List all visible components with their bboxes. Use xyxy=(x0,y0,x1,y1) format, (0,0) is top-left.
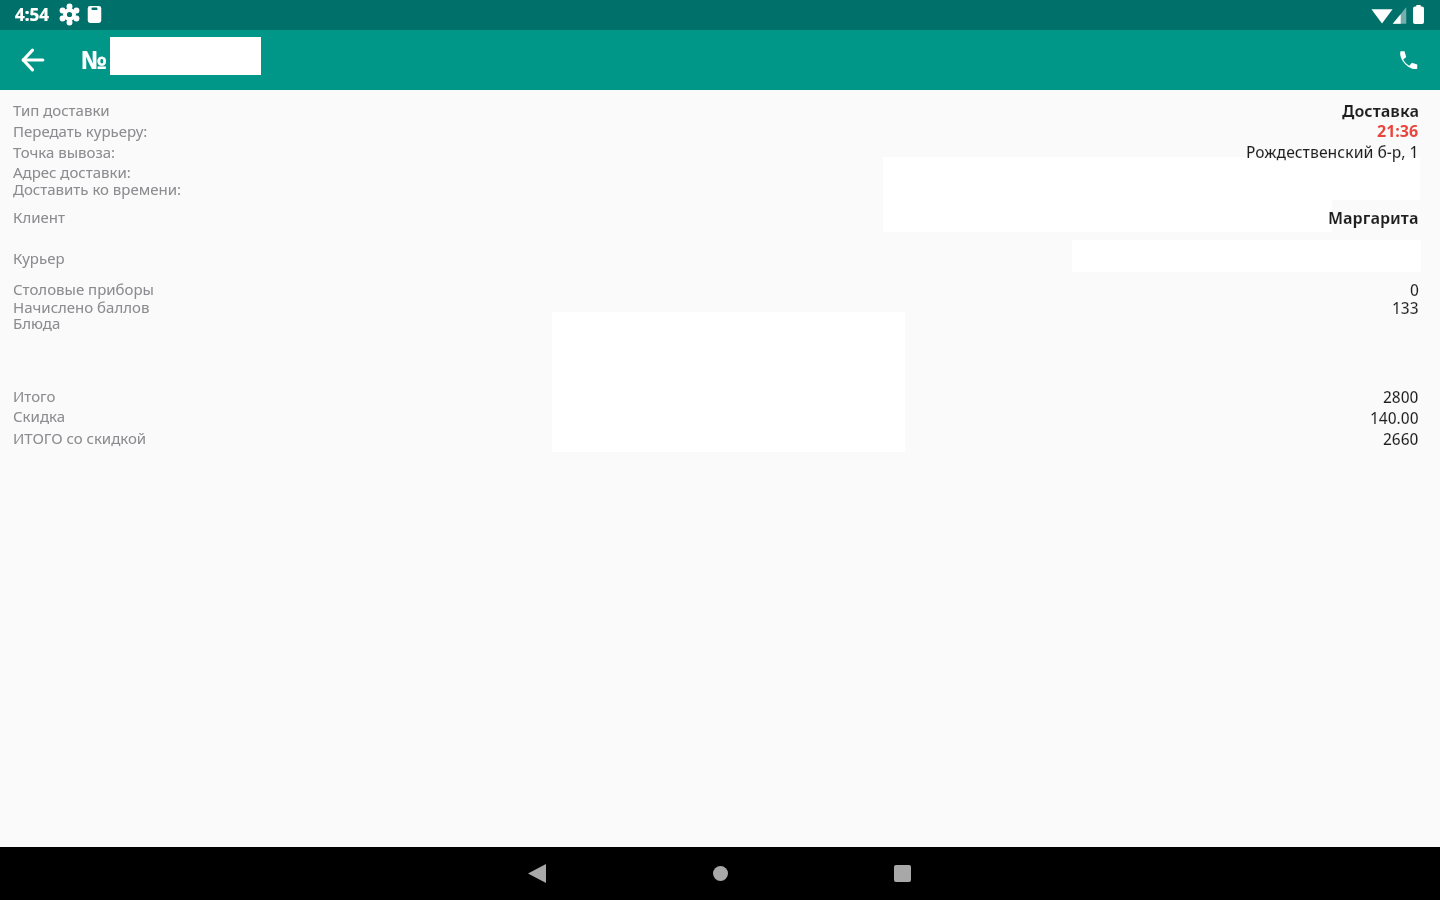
button[interactable]: Доставить ко времени: xyxy=(0,179,1440,199)
button[interactable]: Начислено баллов xyxy=(0,297,1440,318)
staticText: Клиент xyxy=(13,207,65,227)
button[interactable]: Back xyxy=(10,38,54,82)
staticText: Блюда xyxy=(13,313,61,333)
staticText: Передать курьеру: xyxy=(13,121,148,141)
staticText: 4:54 xyxy=(15,3,49,26)
staticText: 133 xyxy=(1392,297,1419,318)
button[interactable]: Точка вывоза: xyxy=(0,142,1440,163)
button[interactable]: Recent apps xyxy=(866,847,938,900)
staticText: Тип доставки xyxy=(13,100,110,120)
staticText: Рождественский б-р, 1 xyxy=(1246,141,1419,162)
staticText: Маргарита xyxy=(1328,207,1419,229)
button[interactable]: Адрес доставки: xyxy=(0,162,1440,182)
button[interactable]: Call xyxy=(1386,38,1430,82)
staticText: Скидка xyxy=(13,406,65,426)
staticText: 140.00 xyxy=(1370,407,1419,428)
staticText: 2660 xyxy=(1383,428,1419,449)
staticText: ИТОГО со скидкой xyxy=(13,428,147,448)
button[interactable]: Home xyxy=(684,847,756,900)
staticText: Итого xyxy=(13,386,56,406)
button[interactable]: Передать курьеру: xyxy=(0,121,1440,143)
button[interactable]: Курьер xyxy=(0,248,1440,268)
button[interactable]: ИТОГО со скидкой xyxy=(0,428,1440,449)
button[interactable]: Блюда xyxy=(0,313,1440,333)
staticText: Доставка xyxy=(1342,100,1419,122)
staticText: 21:36 xyxy=(1377,120,1419,142)
button[interactable]: Скидка xyxy=(0,406,1440,427)
button[interactable]: Итого xyxy=(0,386,1440,407)
staticText: 2800 xyxy=(1383,386,1419,407)
staticText: Точка вывоза: xyxy=(13,142,116,162)
button[interactable]: Тип доставки xyxy=(0,100,1440,122)
staticText: Курьер xyxy=(13,248,65,268)
button[interactable]: Back xyxy=(501,847,573,900)
staticText: 0 xyxy=(1410,279,1419,300)
staticText: № xyxy=(81,42,107,76)
staticText: Столовые приборы xyxy=(13,279,154,299)
button[interactable]: Столовые приборы xyxy=(0,279,1440,300)
staticText: Начислено баллов xyxy=(13,297,150,317)
staticText: Адрес доставки: xyxy=(13,162,131,182)
staticText: Доставить ко времени: xyxy=(13,179,182,199)
button[interactable]: Клиент xyxy=(0,207,1440,229)
